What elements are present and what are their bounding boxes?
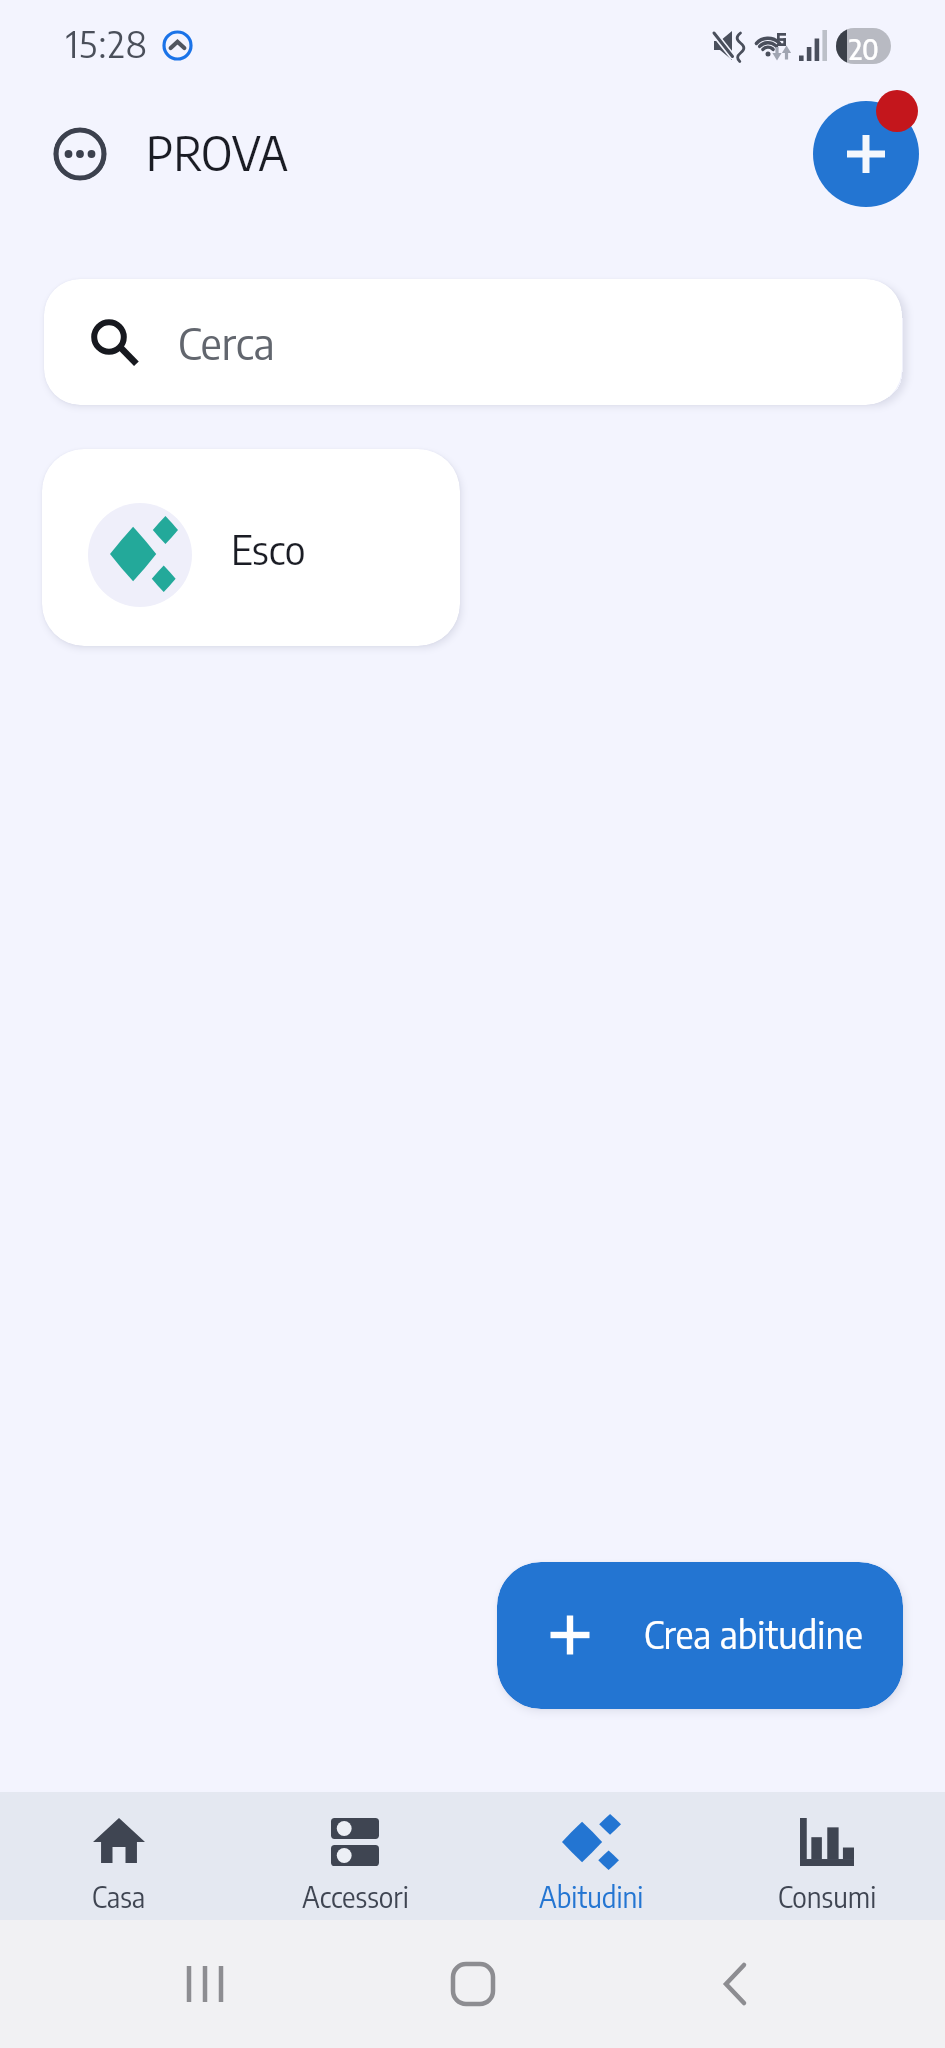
staticText: Esco xyxy=(231,524,306,574)
staticText: Accessori xyxy=(302,1879,409,1914)
staticText: 15:28 xyxy=(66,21,149,66)
button[interactable]: Consumi xyxy=(709,1792,945,1920)
staticText: Cerca xyxy=(178,315,275,370)
staticText: 20 xyxy=(849,31,879,66)
staticText: Casa xyxy=(92,1879,146,1914)
button[interactable]: Home xyxy=(418,1950,528,2018)
button[interactable]: Recent apps xyxy=(150,1950,260,2018)
staticText: Abitudini xyxy=(539,1879,644,1914)
button[interactable]: Casa xyxy=(0,1792,237,1920)
button[interactable]: Crea abitudine xyxy=(497,1562,903,1709)
button[interactable]: Cerca xyxy=(44,279,902,405)
staticText: Consumi xyxy=(778,1879,877,1914)
button[interactable]: Add xyxy=(813,101,919,207)
staticText: Crea abitudine xyxy=(644,1611,864,1658)
staticText: PROVA xyxy=(146,123,289,182)
button[interactable]: Menu xyxy=(53,127,107,181)
button[interactable]: Esco xyxy=(42,449,460,646)
button[interactable]: Abitudini xyxy=(473,1792,709,1920)
button[interactable]: Accessori xyxy=(237,1792,473,1920)
button[interactable]: Back xyxy=(680,1950,790,2018)
